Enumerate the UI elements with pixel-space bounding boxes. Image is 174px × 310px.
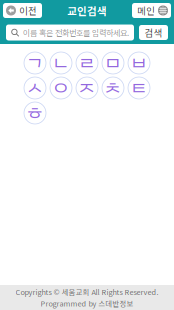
button[interactable]: 이전 [3,3,42,18]
staticText: ㅂ [130,49,147,77]
staticText: ㅇ [52,74,69,102]
button[interactable]: 검색 [139,25,168,40]
button[interactable]: 메인 [132,3,171,18]
button[interactable]: ㅅ [24,77,46,99]
button[interactable]: ㅊ [102,77,124,99]
staticText: ㅁ [104,49,121,77]
button[interactable]: ㅇ [50,77,72,99]
button[interactable]: ㅎ [24,102,46,124]
staticText: 검색 [144,26,162,39]
staticText: 메인 [137,4,155,17]
staticText: ㄹ [78,49,95,77]
button[interactable]: ㄱ [24,52,46,74]
button[interactable]: ㅌ [128,77,150,99]
staticText: ㅎ [26,99,43,127]
staticText: ㅅ [26,74,43,102]
staticText: ㅈ [78,74,95,102]
staticText: ㅊ [104,74,121,102]
button[interactable]: ㄹ [76,52,98,74]
button[interactable]: ㅈ [76,77,98,99]
staticText: 이름 혹은 전화번호를 입력하세요. [23,27,129,38]
staticText: Programmed by 스데반정보 [40,298,133,309]
button[interactable]: ㅁ [102,52,124,74]
button[interactable]: ㅂ [128,52,150,74]
button[interactable]: ㄴ [50,52,72,74]
staticText: 이전 [19,4,37,17]
staticText: 교인검색 [67,3,107,18]
staticText: Copyrights © 세움교회 All Rights Reserved. [15,286,158,297]
staticText: ㅌ [130,74,147,102]
staticText: ㄱ [26,49,43,77]
staticText: ㄴ [52,49,69,77]
